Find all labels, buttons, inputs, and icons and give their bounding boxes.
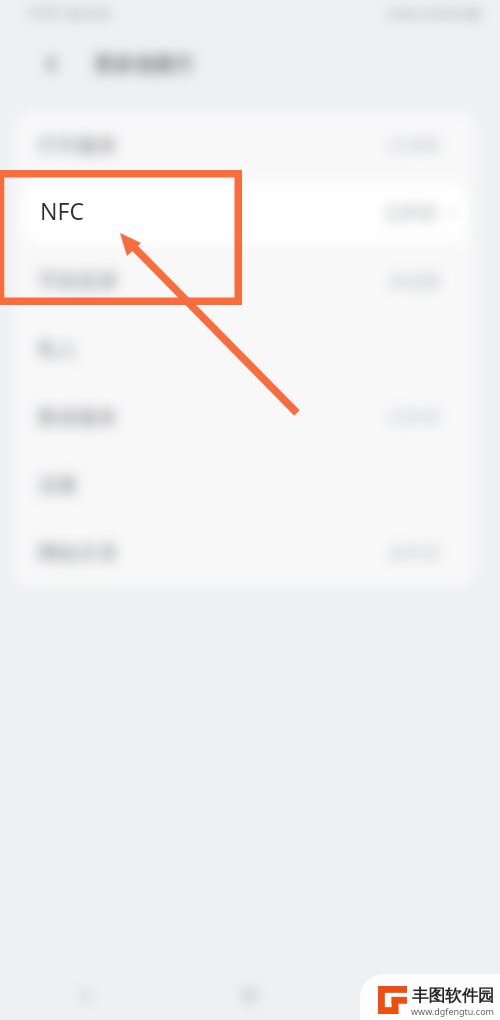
button[interactable]: 打印服务 [14, 111, 476, 179]
button[interactable]: Watermark logo [360, 974, 500, 1020]
button[interactable]: NFC [40, 195, 84, 226]
staticText: 丰图软件园 [412, 985, 495, 1006]
button[interactable]: Back [40, 52, 64, 76]
staticText: 数据服务 [38, 405, 118, 430]
staticText: ● ▬▬▬ [68, 5, 112, 20]
button[interactable]: 私人 [14, 315, 476, 383]
button[interactable]: 已开启 [14, 179, 476, 247]
button[interactable]: Navigation button [333, 970, 500, 1020]
staticText: 流量 [38, 473, 78, 498]
button[interactable]: 手机投屏 [14, 247, 476, 315]
staticText: 未连接 [389, 271, 440, 292]
staticText: 已开启 [385, 203, 436, 224]
button[interactable]: 数据服务 [14, 383, 476, 451]
staticText: NFC [40, 195, 84, 226]
staticText: 14:05 [25, 3, 61, 22]
staticText: 打印服务 [38, 133, 118, 158]
staticText: 已关闭 [389, 135, 440, 156]
staticText: 私人 [38, 337, 78, 362]
staticText: www.dgfengtu.com [411, 1005, 495, 1017]
staticText: 手机投屏 [38, 269, 118, 294]
staticText: ▬▬▬ ▬ ▮ ▬▬ ▮▮ [388, 5, 480, 20]
staticText: 更多连接方 [94, 52, 194, 77]
button[interactable]: 网络共享 [14, 519, 476, 587]
staticText: 网络共享 [38, 541, 118, 566]
button[interactable]: 流量 [14, 451, 476, 519]
